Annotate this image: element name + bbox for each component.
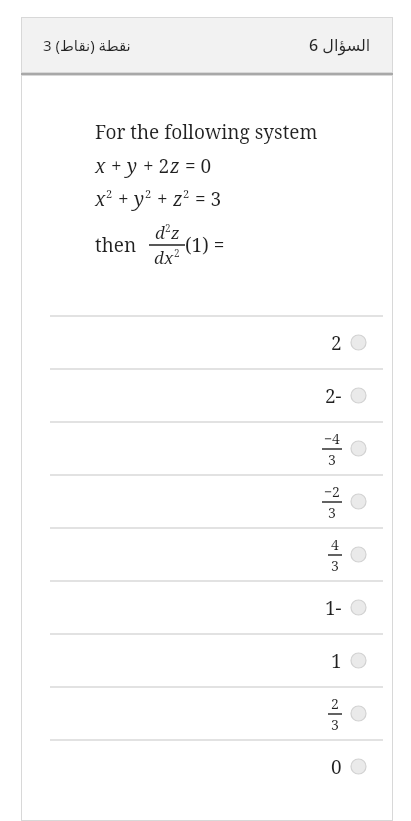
staticText: z bbox=[170, 153, 180, 179]
button[interactable]: 2 bbox=[21, 317, 393, 368]
button[interactable]: 2- bbox=[21, 370, 393, 421]
staticText: d bbox=[154, 246, 164, 269]
staticText: 4 bbox=[331, 535, 339, 554]
staticText: −2 bbox=[324, 482, 340, 501]
staticText: 2 bbox=[165, 221, 171, 235]
button[interactable]: −4 bbox=[21, 423, 393, 474]
staticText: 2 bbox=[145, 186, 152, 201]
staticText: 2 bbox=[183, 186, 190, 201]
button[interactable]: −2 bbox=[21, 476, 393, 527]
staticText: y bbox=[134, 186, 145, 212]
staticText: 0 bbox=[331, 754, 342, 780]
staticText: 1- bbox=[325, 595, 342, 621]
staticText: + bbox=[106, 153, 127, 179]
staticText: السؤال 6 bbox=[309, 34, 371, 56]
staticText: = 0 bbox=[180, 153, 212, 179]
staticText: 2- bbox=[325, 383, 342, 409]
button[interactable]: 1- bbox=[21, 582, 393, 633]
staticText: z bbox=[171, 221, 180, 244]
button[interactable]: 4 bbox=[21, 529, 393, 580]
staticText: 3 bbox=[331, 715, 339, 734]
button[interactable]: 0 bbox=[21, 741, 393, 792]
staticText: 2 bbox=[106, 186, 113, 201]
staticText: x bbox=[95, 153, 106, 179]
staticText: = 3 bbox=[190, 186, 222, 212]
staticText: y bbox=[127, 153, 138, 179]
staticText: For the following system bbox=[95, 119, 318, 145]
staticText: 3 نقطة (نقاط) bbox=[43, 35, 131, 55]
button[interactable]: 1 bbox=[21, 635, 393, 686]
staticText: 1 bbox=[331, 648, 342, 674]
staticText: then bbox=[95, 232, 137, 258]
button[interactable]: 2 bbox=[21, 688, 393, 739]
staticText: 3 bbox=[328, 450, 336, 469]
staticText: x bbox=[164, 246, 174, 269]
staticText: + 2 bbox=[138, 153, 170, 179]
staticText: 3 bbox=[328, 503, 336, 522]
staticText: x bbox=[95, 186, 106, 212]
staticText: + bbox=[113, 186, 134, 212]
staticText: −4 bbox=[324, 429, 340, 448]
staticText: 2 bbox=[331, 694, 339, 713]
staticText: 2 bbox=[331, 330, 342, 356]
staticText: + bbox=[152, 186, 173, 212]
staticText: (1) = bbox=[185, 232, 225, 258]
staticText: 2 bbox=[174, 246, 180, 260]
staticText: z bbox=[173, 186, 183, 212]
staticText: 3 bbox=[331, 556, 339, 575]
staticText: d bbox=[155, 221, 165, 244]
